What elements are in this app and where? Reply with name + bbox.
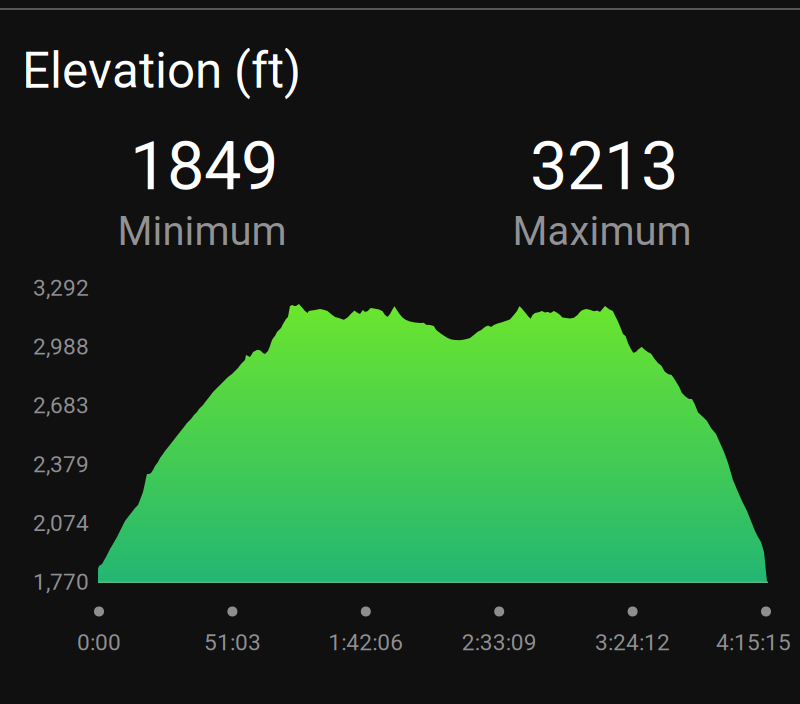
staticText: 2:33:09 xyxy=(462,629,537,656)
staticText: 3,292 xyxy=(33,275,89,301)
staticText: 1:42:06 xyxy=(328,629,403,656)
button[interactable]: Elevation chart xyxy=(98,300,768,583)
staticText: Minimum xyxy=(117,208,286,255)
staticText: 2,683 xyxy=(33,392,89,419)
staticText: 2,379 xyxy=(33,451,89,478)
staticText: 51:03 xyxy=(204,629,261,656)
staticText: 2,074 xyxy=(33,510,89,536)
staticText: 1,770 xyxy=(33,569,89,595)
staticText: 1849 xyxy=(130,127,278,206)
staticText: 2,988 xyxy=(33,333,89,360)
staticText: 4:15:15 xyxy=(716,629,791,656)
staticText: Elevation (ft) xyxy=(22,42,301,100)
staticText: 3:24:12 xyxy=(595,629,670,656)
staticText: Maximum xyxy=(512,208,691,255)
staticText: 3213 xyxy=(530,127,678,206)
staticText: 0:00 xyxy=(77,629,121,656)
